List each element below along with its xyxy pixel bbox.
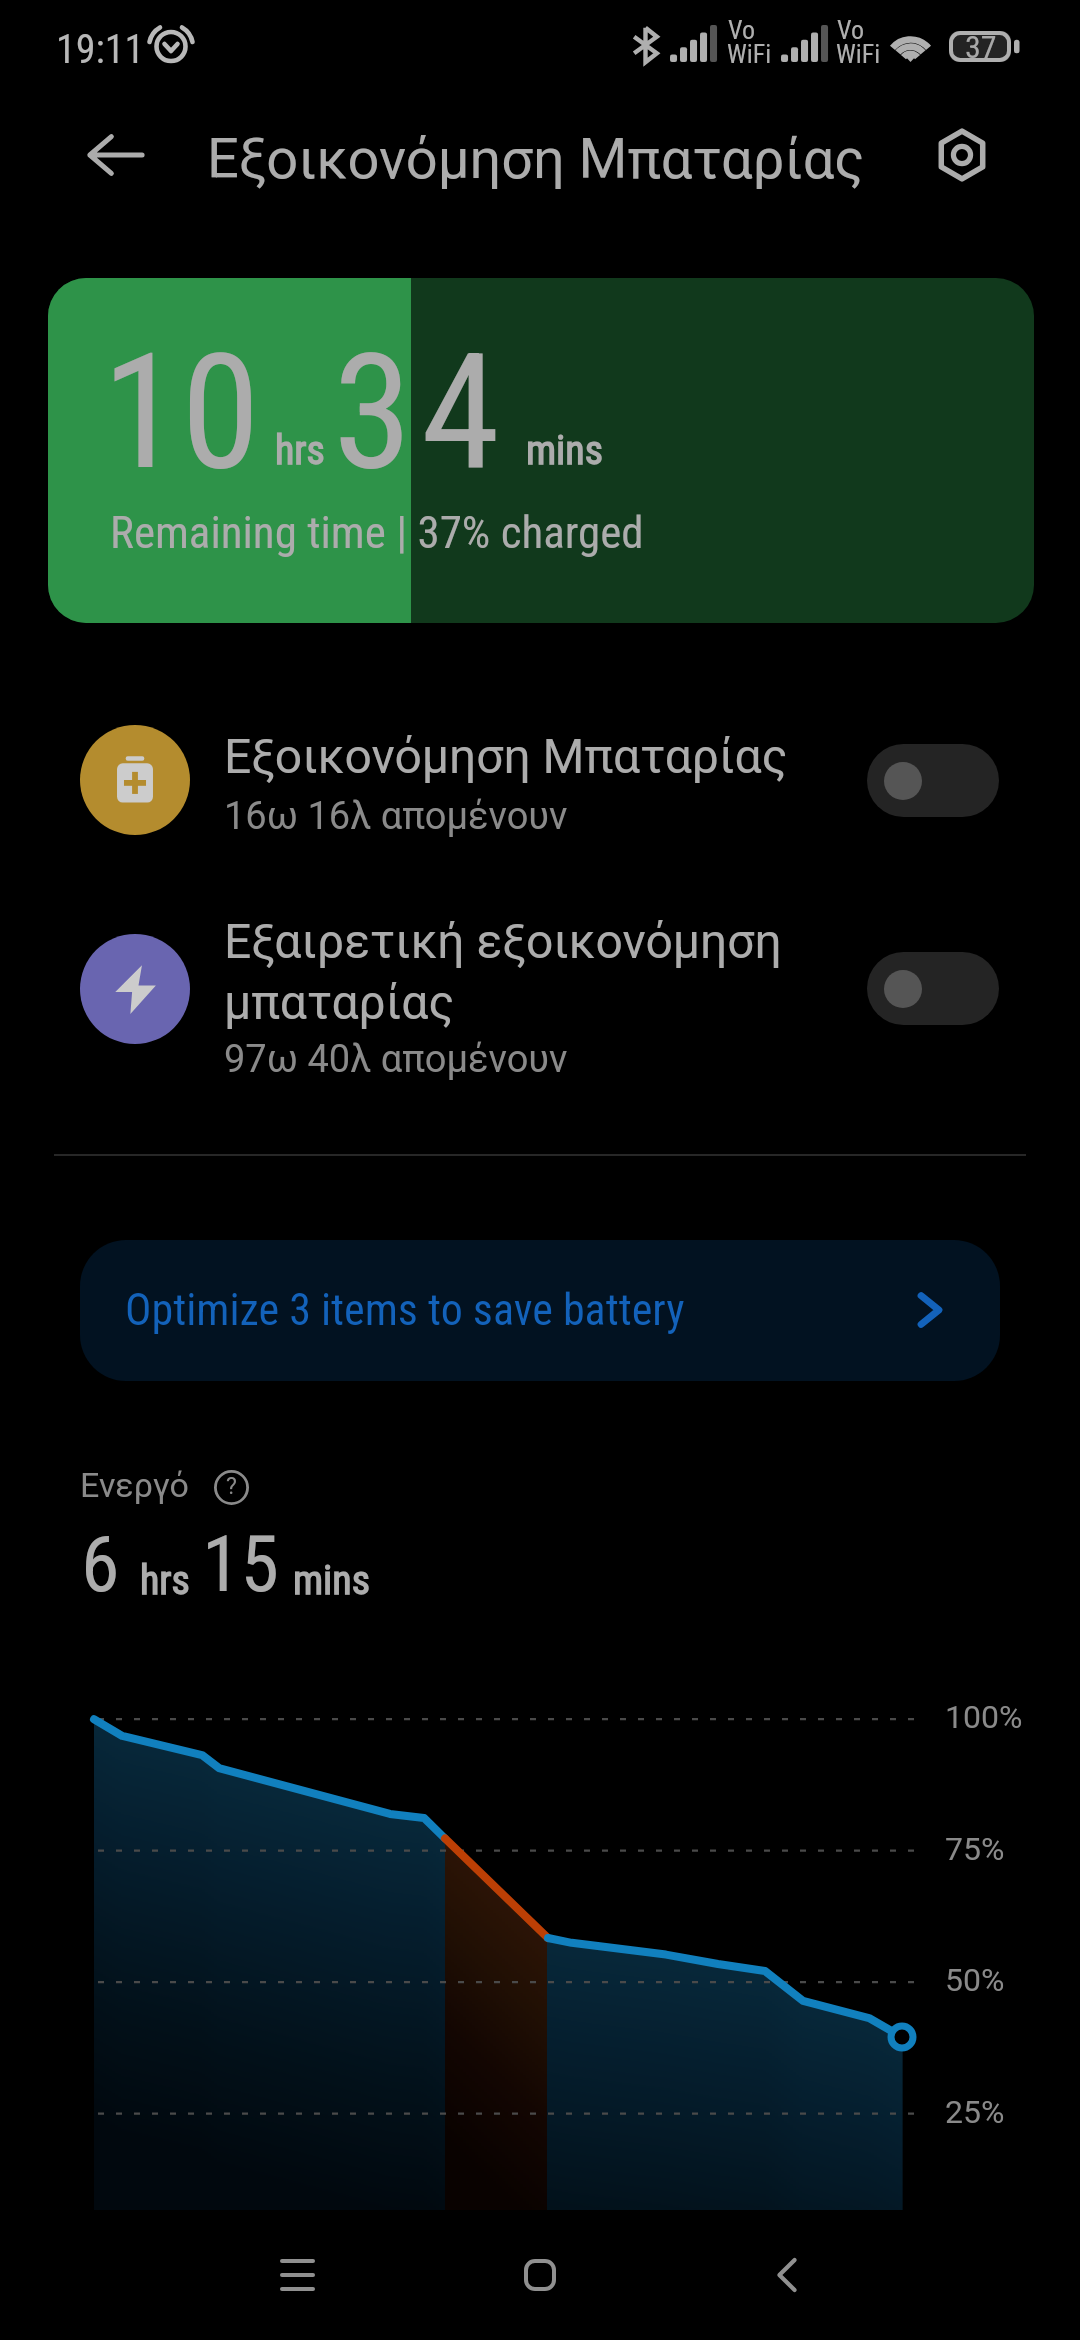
button[interactable]: Back [743, 2231, 831, 2319]
staticText: 34 [333, 319, 509, 507]
staticText: 15 [202, 1519, 280, 1610]
staticText: Vo [837, 15, 865, 45]
staticText: 25% [945, 2093, 1005, 2131]
staticText: 37 [965, 28, 997, 66]
staticText: 50% [945, 1961, 1005, 1999]
staticText: WiFi [727, 39, 772, 69]
staticText: WiFi [836, 39, 881, 69]
staticText: 100% [945, 1698, 1023, 1736]
button[interactable]: Help [205, 1461, 257, 1513]
staticText: 16ω 16λ απομένουν [224, 794, 568, 839]
staticText: Vo [728, 15, 756, 45]
staticText: Remaining time | 37% charged [110, 506, 644, 559]
button[interactable]: Back [71, 110, 161, 200]
button[interactable]: Εξοικονόμηση Μπαταρίας [0, 700, 1080, 860]
staticText: Εξοικονόμηση Μπαταρίας [224, 728, 788, 784]
button[interactable]: Toggle [867, 744, 999, 817]
staticText: 6 [81, 1519, 120, 1610]
staticText: Εξοικονόμηση Μπαταρίας [207, 126, 865, 192]
button[interactable]: Recents [253, 2231, 341, 2319]
staticText: 19:11 [56, 26, 145, 73]
button[interactable]: Εξαιρετική εξοικονόμηση μπαταρίας [0, 905, 1080, 1105]
staticText: mins [526, 427, 603, 474]
staticText: 97ω 40λ απομένουν [224, 1037, 568, 1082]
staticText: 75% [945, 1830, 1005, 1868]
staticText: Optimize 3 items to save battery [125, 1284, 685, 1336]
staticText: Εξαιρετική εξοικονόμηση μπαταρίας [224, 913, 782, 1031]
button[interactable]: Toggle [867, 952, 999, 1025]
button[interactable]: Settings [917, 110, 1007, 200]
staticText: mins [293, 1557, 370, 1604]
staticText: hrs [275, 427, 325, 474]
staticText: Ενεργό [80, 1465, 189, 1505]
staticText: 10 [102, 319, 260, 507]
button[interactable]: 10 [48, 278, 1034, 623]
staticText: hrs [140, 1557, 190, 1604]
button[interactable]: Optimize 3 items to save battery [80, 1240, 1000, 1381]
staticText: ? [226, 1473, 237, 1500]
button[interactable]: Home [496, 2231, 584, 2319]
